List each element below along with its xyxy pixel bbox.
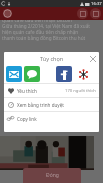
staticText: Giữa tháng 2/2014, tại Việt Nam đã xuất <box>2 23 91 29</box>
staticText: Copy link <box>17 116 37 122</box>
staticText: Yêu thích <box>17 88 37 94</box>
button[interactable]: Logo <box>2 8 13 19</box>
staticText: hiện quán cafe đầu tiên chấp nhận <box>2 29 79 35</box>
button[interactable]: Text size <box>77 8 88 19</box>
staticText: Xem bằng trình duyệt <box>17 102 64 108</box>
button[interactable]: Email <box>6 66 22 82</box>
button[interactable]: Facebook <box>56 66 72 82</box>
staticText: Đóng <box>46 172 59 179</box>
button[interactable]: More <box>75 66 91 82</box>
button[interactable]: Close <box>86 52 99 65</box>
staticText: quán cafe đầu tiên nhận Bitcoin <box>2 17 72 23</box>
staticText: 16:37 <box>91 1 102 7</box>
button[interactable]: Yêu thích <box>4 84 99 97</box>
staticText: 170 người thích <box>65 88 96 94</box>
staticText: thanh toán bằng đồng Bitcoin thu hút <box>2 35 86 41</box>
button[interactable]: Share <box>90 8 101 19</box>
button[interactable]: Message <box>24 66 40 82</box>
button[interactable]: Copy link <box>4 112 99 125</box>
button[interactable]: Xem bằng trình duyệt <box>4 98 99 111</box>
button[interactable]: Đóng <box>23 168 81 183</box>
staticText: Tùy chọn <box>40 55 64 62</box>
